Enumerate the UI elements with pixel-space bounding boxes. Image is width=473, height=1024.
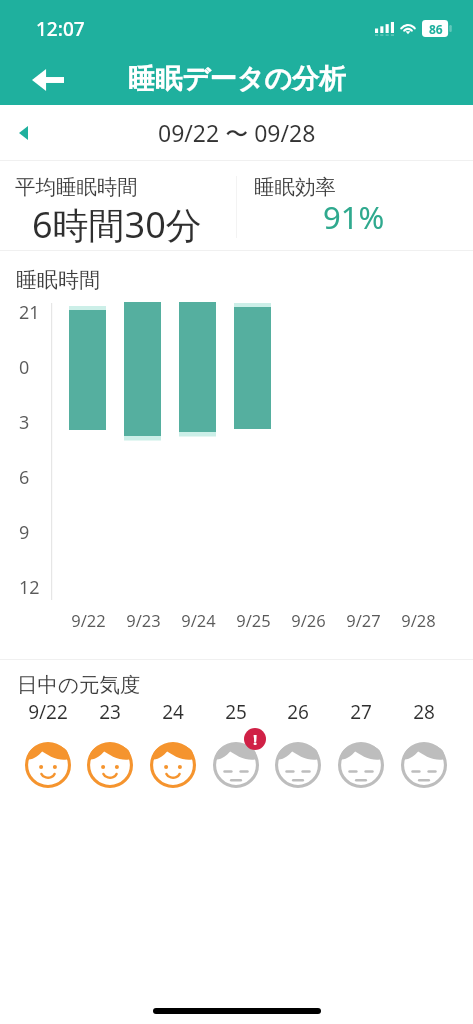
other: Previous week <box>10 120 36 146</box>
staticText: 3 <box>19 410 30 434</box>
staticText: 12:07 <box>36 16 85 42</box>
staticText: 12 <box>19 575 40 599</box>
staticText: 9/25 <box>236 609 271 631</box>
staticText: 25 <box>225 699 247 723</box>
staticText: 23 <box>99 699 121 723</box>
staticText: 睡眠データの分析 <box>128 62 346 96</box>
staticText: 91% <box>323 196 385 238</box>
staticText: 9/28 <box>401 609 436 631</box>
staticText: 9/23 <box>126 609 161 631</box>
staticText: 9/24 <box>181 609 216 631</box>
staticText: 9/26 <box>291 609 326 631</box>
button[interactable]: Previous week <box>0 105 473 160</box>
button[interactable]: Back <box>29 61 67 99</box>
staticText: 86 <box>429 21 443 37</box>
staticText: 09/22 〜 09/28 <box>158 117 316 148</box>
staticText: 6時間30分 <box>32 200 202 249</box>
staticText: 6 <box>19 465 30 489</box>
staticText: 21 <box>19 300 40 324</box>
staticText: 睡眠時間 <box>16 267 100 293</box>
staticText: 9/22 <box>71 609 106 631</box>
staticText: 28 <box>413 699 435 723</box>
staticText: 27 <box>350 699 372 723</box>
staticText: 0 <box>19 355 30 379</box>
staticText: 9 <box>19 520 30 544</box>
staticText: 日中の元気度 <box>17 672 141 698</box>
staticText: 9/27 <box>346 609 381 631</box>
staticText: ! <box>253 729 258 749</box>
staticText: 睡眠効率 <box>254 174 336 200</box>
staticText: 9/22 <box>28 699 68 723</box>
staticText: 平均睡眠時間 <box>15 174 138 200</box>
staticText: 26 <box>287 699 309 723</box>
staticText: 24 <box>162 699 184 723</box>
